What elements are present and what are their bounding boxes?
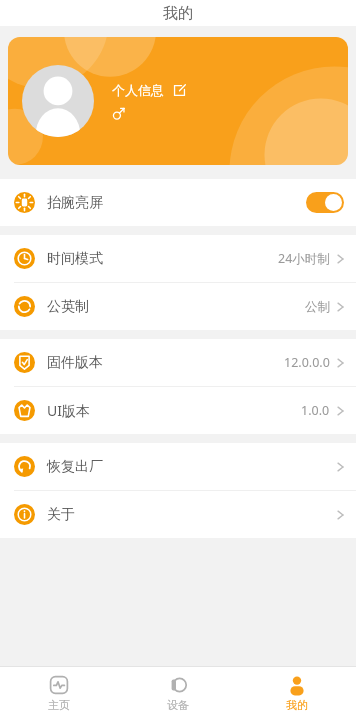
- staticText: 时间模式: [47, 250, 103, 268]
- button[interactable]: 抬腕亮屏: [0, 179, 356, 226]
- staticText: 12.0.0.0: [284, 354, 330, 371]
- staticText: 关于: [47, 506, 75, 524]
- button[interactable]: 我的: [237, 670, 356, 717]
- button[interactable]: 关于: [0, 491, 356, 538]
- button[interactable]: 公英制: [0, 283, 356, 330]
- staticText: 个人信息: [112, 82, 164, 98]
- button[interactable]: 固件版本: [0, 339, 356, 386]
- button[interactable]: 主页: [0, 670, 118, 717]
- button[interactable]: 时间模式: [0, 235, 356, 282]
- button[interactable]: 个人信息: [8, 37, 348, 165]
- staticText: 我的: [286, 698, 308, 712]
- staticText: 1.0.0: [301, 402, 330, 419]
- button[interactable]: 设备: [118, 670, 237, 717]
- staticText: 固件版本: [47, 354, 103, 372]
- button[interactable]: 编辑个人信息: [173, 84, 186, 97]
- staticText: 恢复出厂: [47, 458, 103, 476]
- staticText: 主页: [48, 698, 70, 712]
- staticText: 24小时制: [278, 250, 330, 267]
- button[interactable]: 恢复出厂: [0, 443, 356, 490]
- staticText: 公英制: [47, 298, 89, 316]
- staticText: 设备: [167, 698, 189, 712]
- staticText: 抬腕亮屏: [47, 194, 103, 212]
- button[interactable]: 抬腕亮屏开关: [306, 192, 344, 213]
- staticText: UI版本: [47, 401, 90, 420]
- staticText: 公制: [305, 299, 330, 315]
- button[interactable]: UI版本: [0, 387, 356, 434]
- staticText: 我的: [163, 4, 193, 23]
